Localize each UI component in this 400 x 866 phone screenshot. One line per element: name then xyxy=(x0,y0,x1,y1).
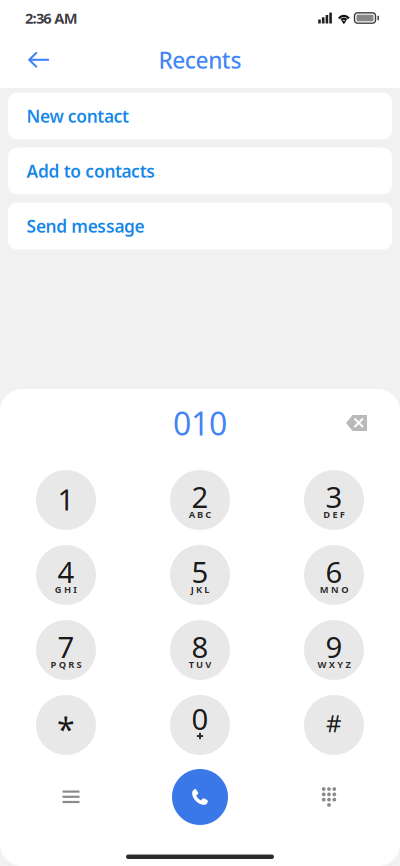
staticText: 6 xyxy=(325,552,342,591)
button[interactable]: Keypad xyxy=(301,769,357,825)
staticText: 3 xyxy=(325,477,342,516)
button[interactable]: Call log options xyxy=(43,769,99,825)
staticText: 2 xyxy=(191,477,208,516)
staticText: Recents xyxy=(158,45,241,75)
staticText: 010 xyxy=(173,402,227,444)
staticText: 2:36 AM xyxy=(25,8,78,28)
button[interactable]: Call xyxy=(172,769,228,825)
staticText: GHI xyxy=(55,583,77,596)
staticText: PQRS xyxy=(51,658,81,671)
button[interactable]: 5 xyxy=(170,545,230,605)
staticText: # xyxy=(326,707,342,739)
button[interactable]: 9 xyxy=(304,620,364,680)
staticText: 4 xyxy=(57,552,74,591)
staticText: JKL xyxy=(191,583,209,596)
staticText: MNO xyxy=(320,583,348,596)
button[interactable]: Delete xyxy=(334,405,379,441)
staticText: WXYZ xyxy=(318,658,350,671)
staticText: TUV xyxy=(189,658,211,671)
staticText: 5 xyxy=(191,552,208,591)
staticText: * xyxy=(57,708,75,750)
button[interactable]: 4 xyxy=(36,545,96,605)
staticText: DEF xyxy=(323,508,345,521)
button[interactable]: Back xyxy=(0,40,63,84)
button[interactable]: Add to contacts xyxy=(8,147,392,194)
button[interactable]: 1 xyxy=(36,470,96,530)
staticText: 8 xyxy=(191,627,208,666)
button[interactable]: 2 xyxy=(170,470,230,530)
button[interactable]: New contact xyxy=(8,92,392,139)
button[interactable]: Send message xyxy=(8,202,392,249)
button[interactable]: 0 xyxy=(170,695,230,755)
button[interactable]: 6 xyxy=(304,545,364,605)
staticText: Add to contacts xyxy=(26,159,155,182)
button[interactable]: # xyxy=(304,695,364,755)
button[interactable]: * xyxy=(36,695,96,755)
button[interactable]: 8 xyxy=(170,620,230,680)
staticText: New contact xyxy=(26,104,129,127)
staticText: Send message xyxy=(26,214,144,237)
staticText: 7 xyxy=(57,627,74,666)
button[interactable]: 3 xyxy=(304,470,364,530)
staticText: 0 xyxy=(191,699,208,738)
staticText: 1 xyxy=(57,479,74,518)
staticText: ABC xyxy=(189,508,211,521)
button[interactable]: 7 xyxy=(36,620,96,680)
staticText: 9 xyxy=(325,627,342,666)
